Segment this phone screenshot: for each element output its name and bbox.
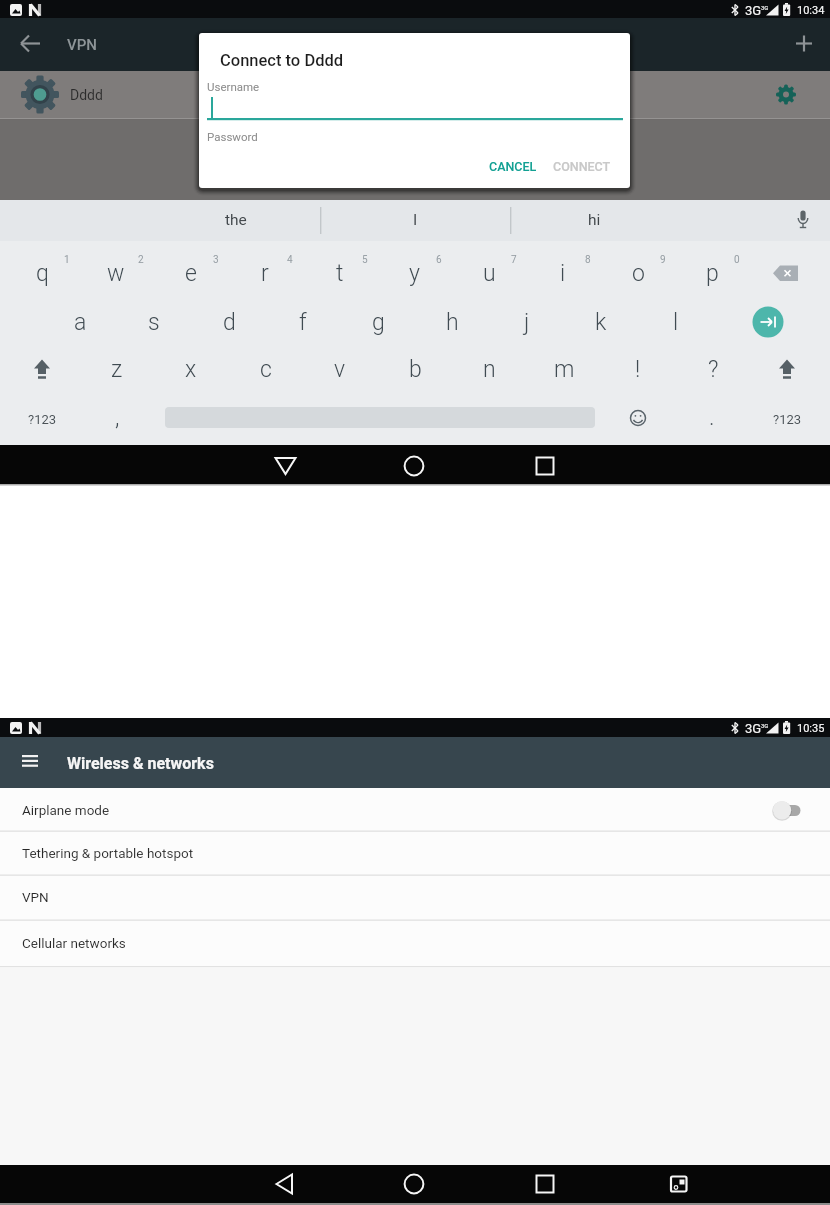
button[interactable] — [490, 297, 564, 345]
button[interactable] — [564, 297, 638, 345]
button[interactable] — [385, 1166, 445, 1202]
button[interactable] — [0, 920, 830, 966]
button[interactable] — [676, 345, 750, 393]
staticText: e — [185, 260, 197, 287]
button[interactable] — [0, 71, 740, 119]
staticText: o — [632, 260, 645, 287]
staticText: CONNECT — [553, 159, 611, 174]
staticText: hi — [588, 211, 601, 229]
button[interactable] — [266, 297, 340, 345]
staticText: f — [299, 309, 307, 336]
staticText: j — [524, 309, 530, 336]
button[interactable] — [154, 345, 228, 393]
staticText: . — [709, 404, 715, 431]
button[interactable] — [385, 447, 445, 483]
button[interactable] — [515, 447, 575, 483]
button[interactable] — [377, 248, 451, 296]
staticText: CANCEL — [489, 159, 537, 174]
button[interactable] — [378, 345, 452, 393]
button[interactable] — [255, 447, 315, 483]
button[interactable] — [675, 248, 749, 296]
staticText: Tethering & portable hotspot — [22, 845, 194, 861]
button[interactable] — [760, 71, 820, 119]
button[interactable] — [117, 297, 191, 345]
staticText: n — [483, 356, 496, 383]
button[interactable] — [514, 202, 698, 239]
staticText: VPN — [22, 889, 49, 905]
staticText: d — [223, 309, 236, 336]
staticText: ?123 — [773, 412, 802, 427]
button[interactable] — [415, 297, 489, 345]
button[interactable] — [324, 202, 508, 239]
staticText: c — [260, 356, 272, 383]
staticText: y — [409, 260, 420, 287]
button[interactable] — [255, 1166, 315, 1202]
staticText: g — [372, 309, 385, 336]
button[interactable] — [5, 394, 79, 442]
staticText: 5 — [362, 254, 368, 266]
button[interactable] — [228, 248, 302, 296]
staticText: the — [225, 211, 247, 229]
button[interactable] — [452, 248, 526, 296]
button[interactable] — [80, 345, 154, 393]
button[interactable] — [165, 394, 595, 442]
button[interactable] — [526, 248, 600, 296]
button[interactable] — [750, 394, 824, 442]
staticText: 10:35 — [797, 722, 825, 735]
button[interactable] — [675, 394, 749, 442]
button[interactable] — [601, 248, 675, 296]
button[interactable] — [0, 788, 830, 831]
button[interactable] — [303, 248, 377, 296]
staticText: t — [336, 260, 344, 287]
button[interactable] — [192, 297, 266, 345]
button[interactable] — [0, 875, 830, 920]
staticText: k — [595, 309, 607, 336]
button[interactable] — [647, 1166, 707, 1202]
staticText: VPN — [67, 36, 97, 54]
staticText: 3G — [761, 4, 769, 11]
staticText: Wireless & networks — [67, 754, 214, 773]
staticText: z — [111, 356, 123, 383]
button[interactable] — [515, 1166, 575, 1202]
button[interactable] — [12, 745, 48, 781]
button[interactable] — [639, 297, 713, 345]
staticText: l — [673, 309, 679, 336]
staticText: Dddd — [70, 87, 103, 103]
button[interactable] — [527, 345, 601, 393]
button[interactable] — [154, 248, 228, 296]
staticText: 0 — [734, 254, 740, 266]
button[interactable] — [79, 248, 153, 296]
button[interactable] — [552, 150, 614, 182]
staticText: 10:34 — [797, 4, 825, 17]
button[interactable] — [5, 345, 79, 393]
staticText: 3G — [745, 3, 762, 18]
button[interactable] — [341, 297, 415, 345]
staticText: a — [74, 309, 87, 336]
staticText: 3G — [745, 721, 762, 736]
button[interactable] — [488, 150, 546, 182]
staticText: Password — [207, 130, 258, 143]
staticText: 8 — [585, 254, 591, 266]
button[interactable] — [762, 795, 812, 825]
button[interactable] — [750, 248, 824, 296]
button[interactable] — [80, 394, 154, 442]
staticText: 6 — [436, 254, 442, 266]
button[interactable] — [750, 345, 824, 393]
button[interactable] — [601, 345, 675, 393]
button[interactable] — [229, 345, 303, 393]
button[interactable] — [43, 297, 117, 345]
button[interactable] — [452, 345, 526, 393]
button[interactable] — [5, 248, 79, 296]
button[interactable] — [601, 394, 675, 442]
button[interactable] — [303, 345, 377, 393]
staticText: 3G — [761, 722, 769, 729]
staticText: u — [483, 260, 496, 287]
button[interactable] — [786, 202, 822, 239]
button[interactable] — [207, 95, 623, 125]
button[interactable] — [12, 26, 48, 62]
button[interactable] — [0, 831, 830, 875]
staticText: ? — [708, 356, 719, 383]
button[interactable] — [160, 202, 318, 239]
button[interactable] — [733, 297, 803, 345]
button[interactable] — [786, 26, 822, 62]
